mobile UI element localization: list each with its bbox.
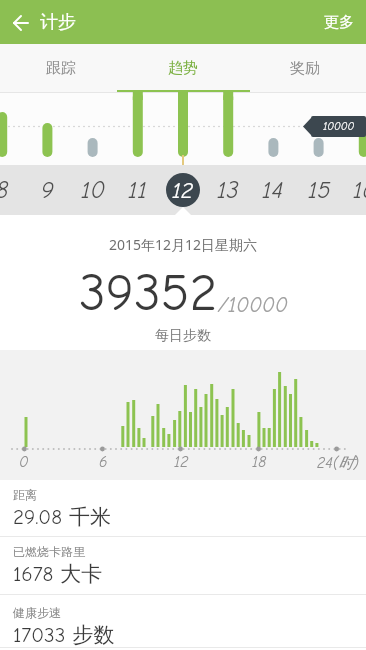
staticText: 奖励 bbox=[290, 59, 320, 78]
button[interactable]: 奖励 bbox=[244, 44, 366, 93]
staticText: 18 bbox=[252, 453, 267, 471]
button[interactable]: 趋势 bbox=[122, 44, 244, 93]
staticText: 更多 bbox=[324, 13, 354, 32]
staticText: 跟踪 bbox=[46, 59, 76, 78]
staticText: 10000 bbox=[323, 120, 355, 133]
button[interactable]: 11 bbox=[115, 165, 161, 215]
button[interactable]: 13 bbox=[205, 165, 251, 215]
button[interactable]: 8 bbox=[0, 165, 25, 215]
button[interactable]: 16 bbox=[341, 165, 366, 215]
button[interactable]: 12 bbox=[166, 173, 200, 207]
staticText: 每日步数 bbox=[155, 327, 211, 345]
staticText: 15 bbox=[308, 176, 331, 204]
button[interactable]: 更多 bbox=[324, 13, 366, 32]
staticText: 1678 大卡 bbox=[13, 561, 103, 587]
staticText: 16 bbox=[353, 176, 366, 204]
staticText: 12 bbox=[174, 453, 189, 471]
staticText: 6 bbox=[99, 453, 108, 471]
staticText: 9 bbox=[41, 176, 54, 204]
staticText: 24(时) bbox=[317, 453, 359, 473]
staticText: 趋势 bbox=[168, 59, 198, 78]
staticText: /10000 bbox=[218, 293, 288, 317]
staticText: 12 bbox=[172, 177, 194, 203]
button[interactable]: 距离 bbox=[0, 480, 366, 536]
staticText: 计步 bbox=[40, 11, 76, 34]
button[interactable]: 健康步速 bbox=[0, 595, 366, 647]
staticText: 17033 步数 bbox=[13, 622, 115, 647]
staticText: 距离 bbox=[13, 487, 37, 502]
button[interactable]: 15 bbox=[296, 165, 342, 215]
staticText: 39352 bbox=[79, 262, 218, 323]
button[interactable]: 10 bbox=[70, 165, 116, 215]
button[interactable]: 跟踪 bbox=[0, 44, 122, 93]
staticText: 健康步速 bbox=[13, 605, 61, 620]
staticText: 0 bbox=[19, 453, 29, 471]
button[interactable]: 已燃烧卡路里 bbox=[0, 537, 366, 594]
staticText: 13 bbox=[217, 176, 239, 204]
staticText: 8 bbox=[0, 176, 9, 204]
staticText: 已燃烧卡路里 bbox=[13, 544, 85, 559]
button[interactable]: 9 bbox=[24, 165, 70, 215]
button[interactable]: 14 bbox=[250, 165, 296, 215]
staticText: 11 bbox=[128, 176, 148, 204]
staticText: 2015年12月12日星期六 bbox=[109, 235, 258, 254]
staticText: 29.08 千米 bbox=[13, 504, 111, 530]
staticText: 10 bbox=[81, 176, 106, 204]
button[interactable]: 计步 bbox=[0, 11, 76, 34]
staticText: 14 bbox=[262, 176, 284, 204]
